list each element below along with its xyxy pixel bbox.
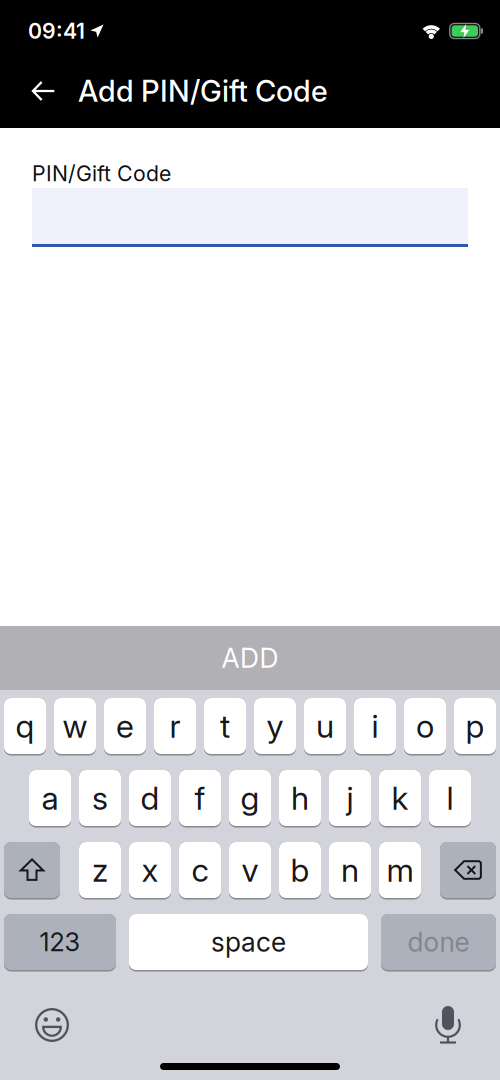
button[interactable]: Back bbox=[0, 81, 55, 101]
button[interactable]: Shift bbox=[4, 842, 60, 899]
button[interactable]: r bbox=[154, 698, 196, 755]
staticText: r bbox=[169, 707, 180, 745]
button[interactable]: s bbox=[79, 770, 121, 827]
staticText: o bbox=[416, 707, 434, 745]
staticText: j bbox=[346, 779, 353, 817]
staticText: m bbox=[386, 851, 413, 889]
staticText: s bbox=[92, 779, 108, 817]
staticText: g bbox=[240, 779, 259, 817]
button[interactable]: f bbox=[179, 770, 221, 827]
staticText: q bbox=[15, 707, 34, 745]
button[interactable]: x bbox=[129, 842, 171, 899]
staticText: n bbox=[341, 851, 359, 889]
staticText: 123 bbox=[39, 927, 80, 957]
button[interactable]: m bbox=[379, 842, 421, 899]
staticText: l bbox=[446, 779, 453, 817]
staticText: p bbox=[465, 707, 484, 745]
staticText: Add PIN/Gift Code bbox=[78, 74, 328, 108]
button[interactable]: i bbox=[354, 698, 396, 755]
button[interactable]: l bbox=[429, 770, 471, 827]
button[interactable]: Dictation bbox=[435, 1006, 461, 1044]
button[interactable]: v bbox=[229, 842, 271, 899]
staticText: k bbox=[391, 779, 408, 817]
staticText: b bbox=[290, 851, 309, 889]
button[interactable]: space bbox=[129, 914, 368, 971]
button[interactable]: Emoji bbox=[35, 1008, 69, 1042]
staticText: h bbox=[291, 779, 309, 817]
button[interactable]: u bbox=[304, 698, 346, 755]
button[interactable]: ADD bbox=[0, 626, 500, 690]
button[interactable]: a bbox=[29, 770, 71, 827]
staticText: e bbox=[116, 707, 134, 745]
button[interactable]: b bbox=[279, 842, 321, 899]
staticText: a bbox=[41, 779, 58, 817]
staticText: 09:41 bbox=[28, 18, 85, 44]
button[interactable]: y bbox=[254, 698, 296, 755]
staticText: x bbox=[141, 851, 158, 889]
button[interactable]: h bbox=[279, 770, 321, 827]
button[interactable]: z bbox=[79, 842, 121, 899]
button[interactable]: q bbox=[4, 698, 46, 755]
button[interactable]: g bbox=[229, 770, 271, 827]
button[interactable]: p bbox=[454, 698, 496, 755]
button[interactable]: Delete bbox=[440, 842, 496, 899]
button[interactable]: c bbox=[179, 842, 221, 899]
staticText: ADD bbox=[221, 642, 278, 674]
staticText: z bbox=[92, 851, 108, 889]
staticText: i bbox=[371, 707, 378, 745]
button[interactable]: n bbox=[329, 842, 371, 899]
button[interactable]: o bbox=[404, 698, 446, 755]
button[interactable]: done bbox=[381, 914, 496, 971]
staticText: c bbox=[191, 851, 208, 889]
button[interactable]: w bbox=[54, 698, 96, 755]
staticText: d bbox=[140, 779, 159, 817]
button[interactable]: k bbox=[379, 770, 421, 827]
staticText: y bbox=[266, 707, 283, 745]
staticText: PIN/Gift Code bbox=[32, 161, 171, 186]
button[interactable]: t bbox=[204, 698, 246, 755]
staticText: w bbox=[62, 707, 87, 745]
staticText: f bbox=[194, 779, 205, 817]
button[interactable]: j bbox=[329, 770, 371, 827]
button[interactable]: e bbox=[104, 698, 146, 755]
staticText: space bbox=[211, 926, 286, 958]
staticText: v bbox=[241, 851, 258, 889]
staticText: done bbox=[407, 926, 469, 958]
button[interactable]: PIN/Gift Code text field bbox=[32, 188, 468, 247]
button[interactable]: 123 bbox=[4, 914, 116, 971]
button[interactable]: d bbox=[129, 770, 171, 827]
staticText: u bbox=[316, 707, 334, 745]
staticText: t bbox=[220, 707, 230, 745]
